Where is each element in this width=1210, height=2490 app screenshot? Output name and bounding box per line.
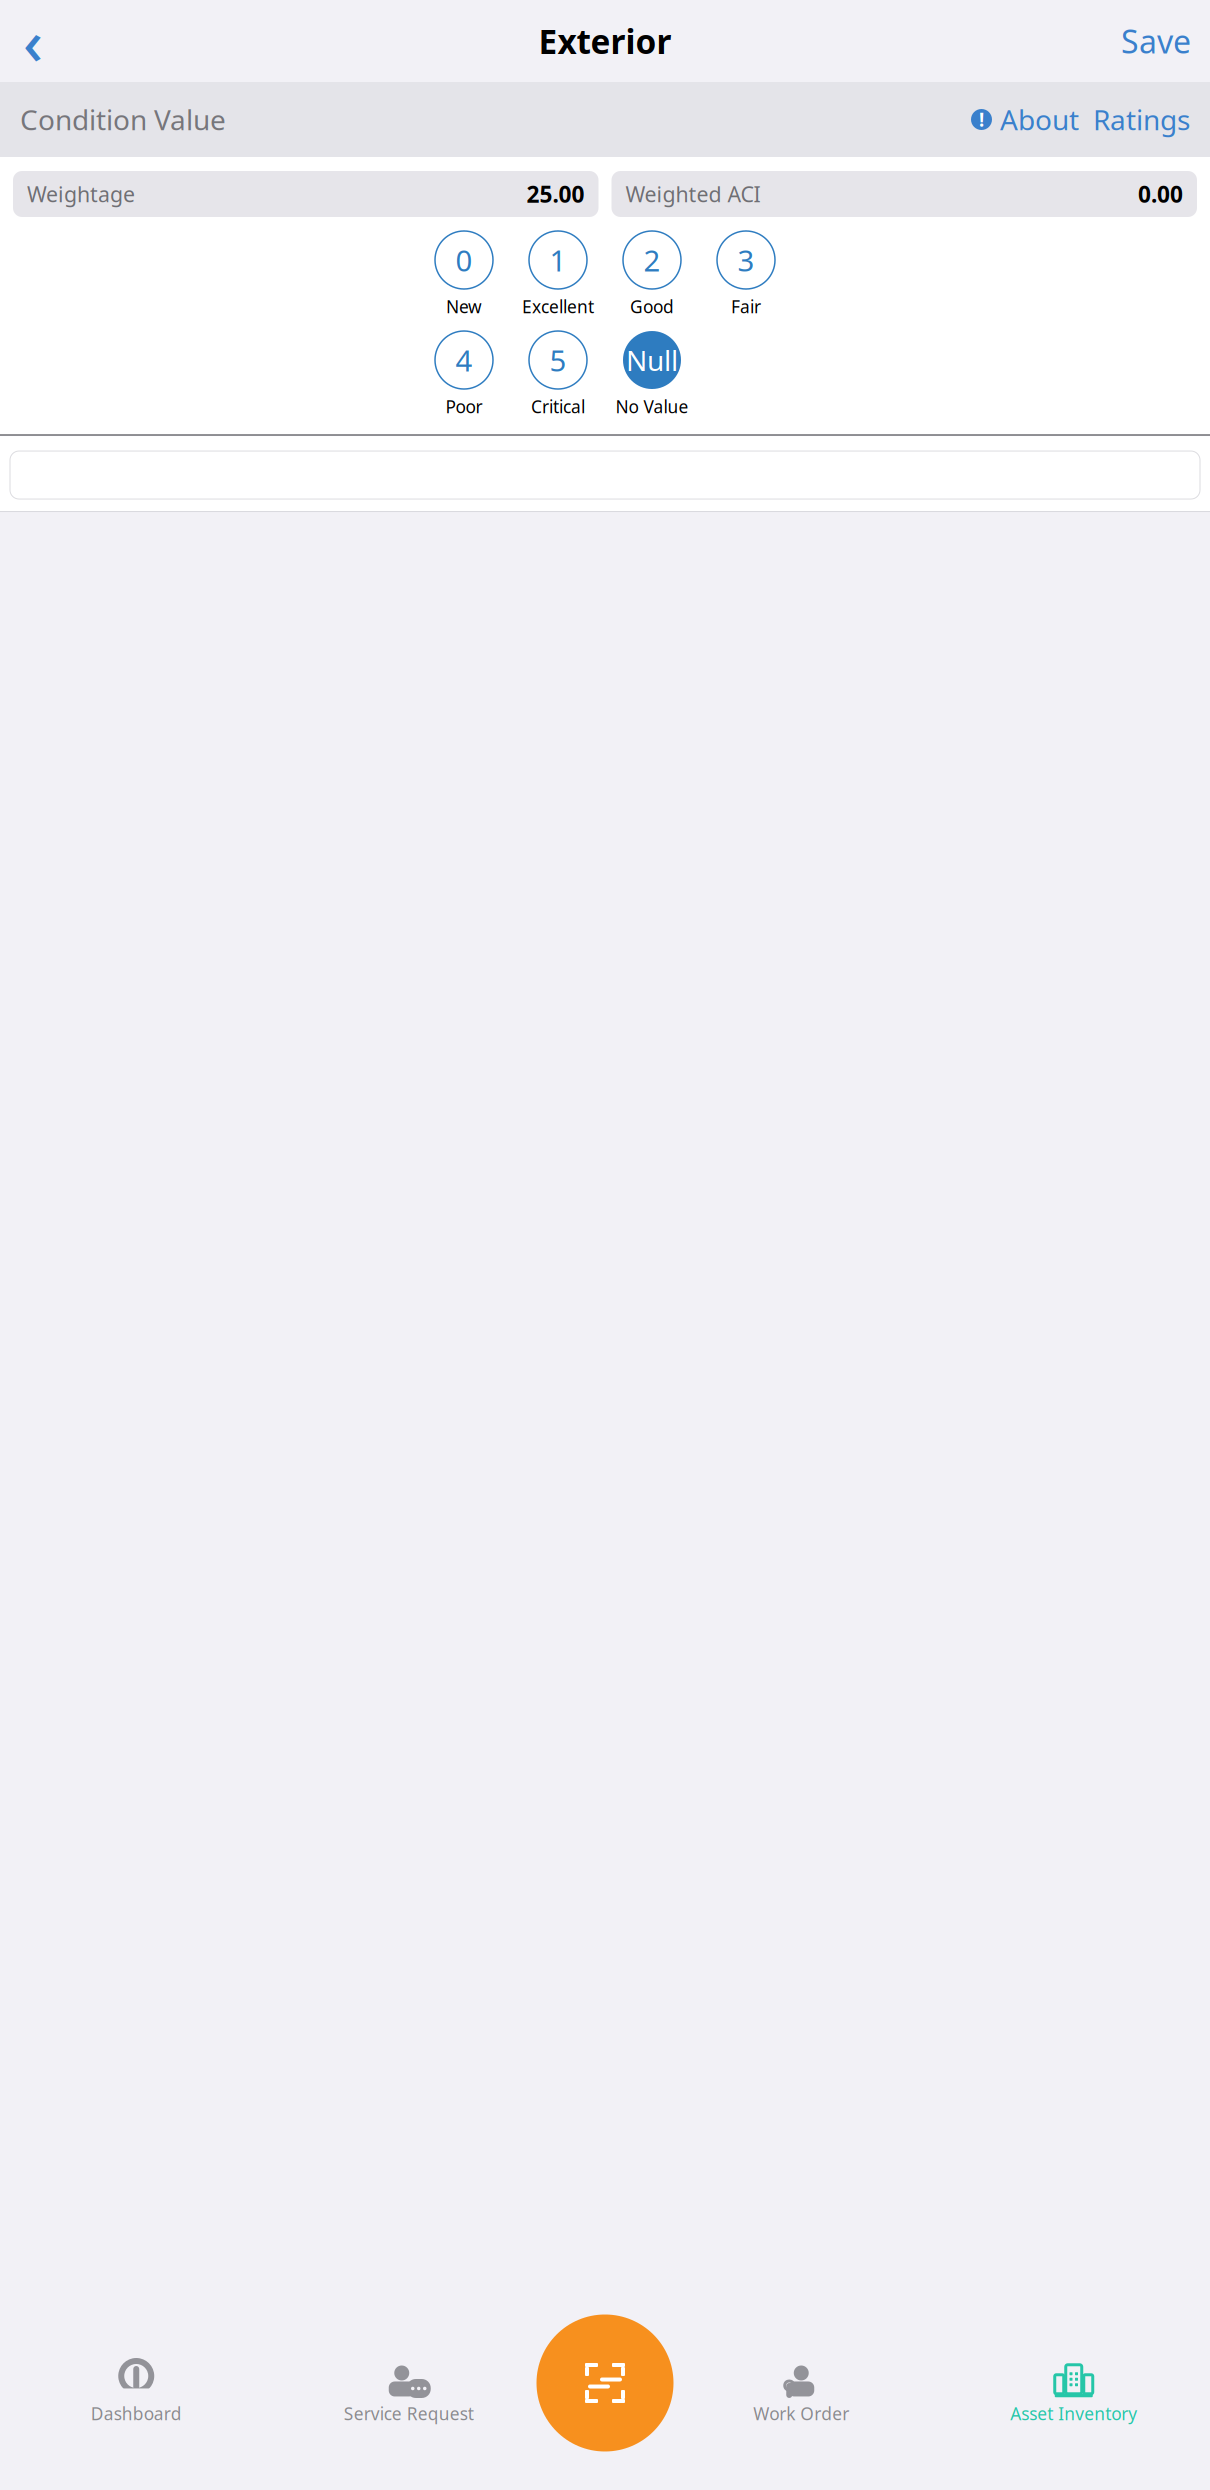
staticText: Fair	[731, 295, 761, 318]
staticText: Null	[626, 341, 678, 379]
staticText: 5	[549, 340, 566, 379]
staticText: Poor	[445, 395, 482, 418]
staticText: Asset Inventory	[1010, 2402, 1137, 2425]
staticText: 2	[643, 240, 660, 279]
staticText: Save	[1121, 20, 1191, 62]
staticText: 3	[737, 240, 754, 279]
button[interactable]: Asset Inventory	[937, 2357, 1210, 2425]
staticText: 0.00	[1138, 179, 1183, 209]
button[interactable]: 2	[605, 231, 699, 318]
button[interactable]: Dashboard	[0, 2357, 272, 2425]
staticText: 25.00	[526, 179, 584, 209]
staticText: !	[979, 107, 984, 132]
staticText: Critical	[531, 395, 585, 418]
button[interactable]: 1	[511, 231, 605, 318]
button[interactable]: 4	[417, 331, 511, 418]
button[interactable]: Save	[1107, 14, 1205, 68]
staticText: Service Request	[344, 2402, 474, 2425]
staticText: 1	[549, 240, 566, 279]
staticText: Weighted ACI	[625, 180, 760, 208]
staticText: No Value	[615, 395, 688, 418]
staticText: ‹	[23, 0, 43, 82]
staticText: Exterior	[538, 19, 671, 63]
button[interactable]: !	[971, 101, 1190, 138]
staticText: New	[446, 295, 482, 318]
button[interactable]: 0	[417, 231, 511, 318]
staticText: Weightage	[27, 180, 135, 208]
staticText: Condition Value	[20, 101, 226, 138]
staticText: Good	[630, 295, 674, 318]
staticText: Dashboard	[91, 2402, 182, 2425]
button[interactable]: Back	[5, 14, 61, 68]
button[interactable]: Null	[605, 331, 699, 418]
button[interactable]: 3	[699, 231, 793, 318]
button[interactable]: Work Order	[665, 2357, 937, 2425]
button[interactable]: Scan	[536, 2314, 673, 2451]
staticText: Work Order	[753, 2402, 849, 2425]
button[interactable]: Service Request	[272, 2357, 545, 2425]
staticText: Excellent	[522, 295, 594, 318]
staticText: About Ratings	[1000, 101, 1190, 138]
staticText: 4	[455, 340, 472, 379]
button[interactable]: 5	[511, 331, 605, 418]
staticText: 0	[455, 240, 472, 279]
